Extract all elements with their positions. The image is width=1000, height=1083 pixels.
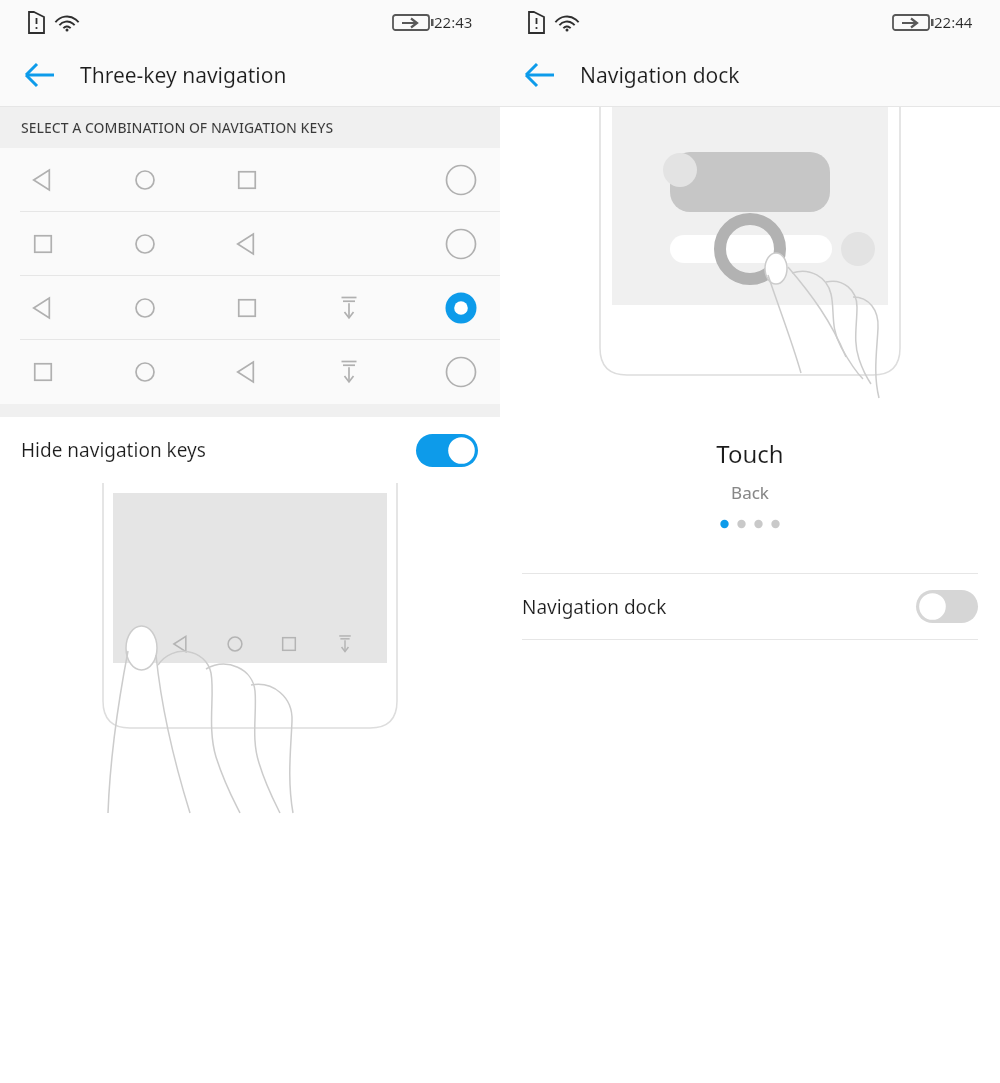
staticText: 22:44 xyxy=(934,12,973,32)
button[interactable]: Back xyxy=(12,47,68,103)
button[interactable] xyxy=(0,276,500,340)
staticText: SELECT A COMBINATION OF NAVIGATION KEYS xyxy=(21,118,334,137)
staticText: Three-key navigation xyxy=(80,61,287,90)
button[interactable]: Hide navigation keys xyxy=(0,417,500,483)
button[interactable] xyxy=(0,212,500,276)
button[interactable]: Navigation dock xyxy=(500,574,1000,639)
staticText: 22:43 xyxy=(434,12,473,32)
staticText: Navigation dock xyxy=(580,61,740,90)
button[interactable]: Switch off xyxy=(916,590,978,623)
button[interactable] xyxy=(0,148,500,212)
staticText: Touch xyxy=(500,437,1000,470)
staticText: Back xyxy=(500,481,1000,504)
staticText: Hide navigation keys xyxy=(21,437,206,463)
button[interactable]: Switch on xyxy=(416,434,478,467)
button[interactable]: Back xyxy=(512,47,568,103)
staticText: Navigation dock xyxy=(522,594,667,620)
button[interactable] xyxy=(0,340,500,404)
